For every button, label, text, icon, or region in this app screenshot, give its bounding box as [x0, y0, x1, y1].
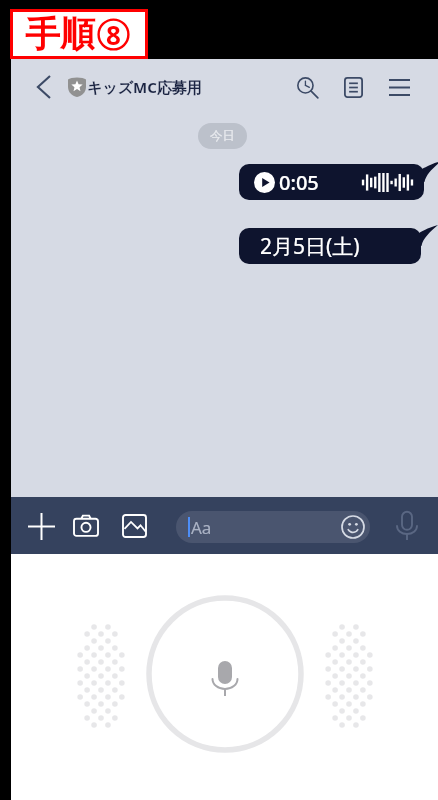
button[interactable]: Emoji: [338, 512, 368, 542]
staticText: キッズMC応募用: [87, 77, 202, 97]
button[interactable]: Play voice message: [239, 164, 424, 200]
button[interactable]: Camera: [69, 509, 103, 543]
button[interactable]: Add: [24, 509, 58, 543]
button[interactable]: Menu: [383, 71, 415, 103]
button[interactable]: 2月5日(土): [239, 228, 421, 264]
button[interactable]: Aa: [176, 511, 370, 543]
staticText: 今日: [210, 128, 235, 144]
button[interactable]: Search: [291, 71, 323, 103]
button[interactable]: Photos: [117, 509, 151, 543]
staticText: 0:05: [279, 169, 319, 196]
staticText: Aa: [191, 516, 212, 539]
staticText: 2月5日(土): [260, 232, 360, 261]
button[interactable]: Record voice: [207, 661, 243, 697]
button[interactable]: Notes: [337, 71, 369, 103]
button[interactable]: Back: [23, 67, 63, 107]
button[interactable]: Voice message: [390, 509, 424, 543]
staticText: 8: [106, 17, 121, 52]
staticText: 手順: [25, 12, 95, 56]
